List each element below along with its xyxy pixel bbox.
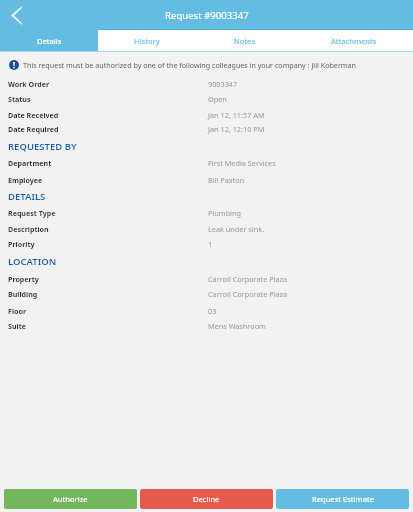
button[interactable]: Building — [0, 286, 413, 302]
button[interactable]: Work Order — [0, 76, 413, 92]
staticText: Authorize — [53, 494, 88, 504]
staticText: Date Received — [8, 110, 59, 120]
button[interactable]: Property — [0, 271, 413, 287]
staticText: Status — [8, 94, 31, 104]
button[interactable]: Priority — [0, 236, 413, 252]
staticText: Description — [8, 224, 49, 234]
staticText: DETAILS — [8, 190, 46, 203]
staticText: 9003347 — [208, 79, 238, 89]
staticText: Attachments — [331, 36, 377, 46]
staticText: Carroll Corporate Plaza — [208, 274, 288, 284]
staticText: Leak under sink. — [208, 224, 265, 234]
staticText: Details — [37, 36, 62, 46]
staticText: Request Estimate — [312, 494, 374, 504]
button[interactable]: Department — [0, 155, 413, 171]
button[interactable]: Decline — [140, 489, 273, 509]
staticText: LOCATION — [8, 255, 57, 268]
staticText: Plumbing — [208, 208, 241, 218]
button[interactable]: Attachments — [294, 30, 413, 51]
staticText: Decline — [193, 494, 220, 504]
button[interactable]: Floor — [0, 303, 413, 319]
staticText: Suite — [8, 321, 26, 331]
staticText: Carroll Corporate Plaza — [208, 289, 288, 299]
button[interactable]: Details — [0, 30, 98, 51]
staticText: Work Order — [8, 79, 50, 89]
staticText: First Media Services — [208, 158, 276, 168]
staticText: Jan 12, 11:57 AM — [208, 110, 265, 120]
staticText: Jan 12, 12:10 PM — [208, 124, 265, 134]
staticText: History — [134, 36, 160, 46]
staticText: This request must be authorized by one o… — [23, 60, 356, 70]
button[interactable]: Notes — [195, 30, 294, 51]
staticText: Request #9003347 — [165, 9, 249, 22]
button[interactable]: Date Required — [0, 121, 413, 137]
staticText: REQUESTED BY — [8, 140, 77, 153]
staticText: 1 — [208, 239, 213, 249]
staticText: Department — [8, 158, 52, 168]
button[interactable]: Date Received — [0, 107, 413, 123]
button[interactable]: Back — [0, 0, 33, 30]
staticText: 03 — [208, 306, 217, 316]
staticText: Notes — [234, 36, 256, 46]
button[interactable]: History — [98, 30, 195, 51]
staticText: Mens Washroom — [208, 321, 266, 331]
staticText: Bill Paxton — [208, 175, 245, 185]
staticText: Date Required — [8, 124, 59, 134]
button[interactable]: Request Estimate — [276, 489, 409, 509]
staticText: Open — [208, 94, 227, 104]
button[interactable]: Status — [0, 91, 413, 107]
staticText: Building — [8, 289, 38, 299]
button[interactable]: Description — [0, 221, 413, 237]
button[interactable]: Request Type — [0, 205, 413, 221]
staticText: Property — [8, 274, 39, 284]
staticText: Request Type — [8, 208, 56, 218]
staticText: Priority — [8, 239, 35, 249]
staticText: Floor — [8, 306, 27, 316]
button[interactable]: Suite — [0, 318, 413, 334]
button[interactable]: Employee — [0, 172, 413, 188]
staticText: Employee — [8, 175, 43, 185]
button[interactable]: Authorize — [4, 489, 137, 509]
